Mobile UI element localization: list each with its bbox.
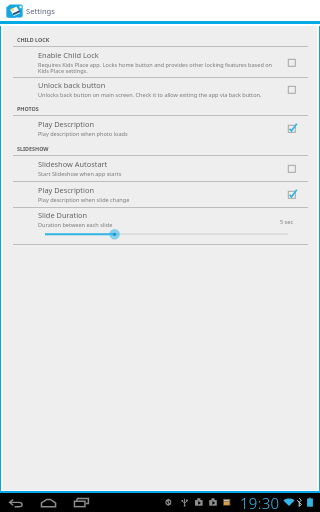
button[interactable]: Slide Duration	[3, 208, 317, 244]
button[interactable]: Play Description	[3, 116, 317, 140]
staticText: 19:30	[240, 493, 280, 512]
button[interactable]: Unlock back button	[3, 78, 317, 101]
button[interactable]: Checked	[286, 189, 297, 200]
staticText: Unlocks back button on main screen. Chec…	[38, 91, 262, 99]
staticText: Slide Duration	[38, 210, 88, 220]
staticText: Settings	[26, 6, 55, 16]
staticText: PHOTOS	[17, 105, 39, 112]
staticText: Requires Kids Place app. Locks home butt…	[38, 61, 280, 74]
staticText: Play description when slide change	[38, 196, 130, 204]
button[interactable]: Back	[6, 493, 26, 512]
staticText: Duration between each slide	[38, 221, 113, 229]
button[interactable]: Settings	[0, 0, 320, 21]
button[interactable]: Checked	[286, 123, 297, 134]
button[interactable]: Play Description	[3, 182, 317, 207]
staticText: Slideshow Autostart	[38, 159, 108, 169]
button[interactable]: Home	[38, 493, 58, 512]
button[interactable]: Slideshow Autostart	[3, 156, 317, 181]
staticText: Enable Child Lock	[38, 50, 99, 60]
button[interactable]: Enable Child Lock	[3, 47, 317, 77]
staticText: Unlock back button	[38, 80, 106, 90]
staticText: CHILD LOCK	[17, 36, 50, 43]
staticText: Start Slideshow when app starts	[38, 170, 122, 178]
staticText: SLIDESHOW	[17, 145, 49, 152]
button[interactable]: Unchecked	[286, 57, 297, 68]
staticText: Play Description	[38, 119, 94, 129]
button[interactable]: Unchecked	[286, 163, 297, 174]
button[interactable]: Unchecked	[286, 84, 297, 95]
staticText: Play description when photo loads	[38, 130, 128, 138]
staticText: Play Description	[38, 185, 94, 195]
button[interactable]: Recent apps	[71, 493, 91, 512]
staticText: 5 sec	[280, 218, 294, 226]
